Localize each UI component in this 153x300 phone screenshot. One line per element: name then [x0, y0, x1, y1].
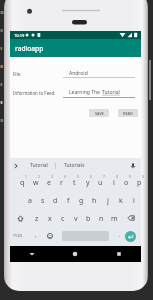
- staticText: Tutorials: [64, 162, 85, 169]
- staticText: l: [133, 196, 135, 206]
- staticText: Information to Feed:: [13, 90, 56, 96]
- staticText: r: [60, 178, 63, 188]
- staticText: 3: [51, 175, 53, 179]
- button[interactable]: o: [120, 173, 133, 191]
- button[interactable]: f: [62, 191, 75, 209]
- button[interactable]: Back: [24, 246, 40, 262]
- staticText: SAVE: [95, 111, 104, 116]
- button[interactable]: i: [107, 173, 120, 191]
- button[interactable]: x: [43, 209, 56, 227]
- button[interactable]: More suggestions: [13, 163, 19, 169]
- button[interactable]: Home: [67, 246, 83, 262]
- button[interactable]: r: [55, 173, 68, 191]
- staticText: 9: [129, 175, 131, 179]
- staticText: 10:19: [14, 33, 25, 38]
- button[interactable]: Voice input: [128, 161, 137, 170]
- button[interactable]: m: [108, 209, 121, 227]
- button[interactable]: z: [30, 209, 43, 227]
- button[interactable]: u: [94, 173, 107, 191]
- button[interactable]: b: [82, 209, 95, 227]
- staticText: b: [86, 214, 91, 224]
- button[interactable]: Recents: [111, 246, 127, 262]
- button[interactable]: v: [69, 209, 82, 227]
- button[interactable]: a: [23, 191, 36, 209]
- button[interactable]: w: [29, 173, 42, 191]
- staticText: File:: [13, 71, 22, 77]
- staticText: ,: [35, 231, 37, 239]
- staticText: z: [35, 214, 39, 224]
- button[interactable]: Emoji: [43, 227, 56, 245]
- button[interactable]: h: [88, 191, 101, 209]
- button[interactable]: ?123: [10, 227, 26, 245]
- button[interactable]: Enter: [125, 231, 136, 242]
- button[interactable]: l: [127, 191, 140, 209]
- staticText: a: [28, 196, 32, 206]
- button[interactable]: y: [81, 173, 94, 191]
- staticText: s: [41, 196, 45, 206]
- staticText: 4: [64, 175, 66, 179]
- staticText: 7: [103, 175, 105, 179]
- staticText: o: [124, 178, 129, 188]
- button[interactable]: Backspace: [121, 209, 141, 227]
- button[interactable]: SAVE: [89, 109, 109, 117]
- button[interactable]: ,: [29, 227, 42, 245]
- staticText: q: [20, 178, 25, 188]
- staticText: n: [99, 214, 104, 224]
- button[interactable]: d: [49, 191, 62, 209]
- button[interactable]: k: [114, 191, 127, 209]
- button[interactable]: g: [75, 191, 88, 209]
- button[interactable]: n: [95, 209, 108, 227]
- staticText: h: [92, 196, 97, 206]
- staticText: .: [119, 231, 121, 239]
- staticText: g: [79, 196, 84, 206]
- staticText: i: [113, 178, 115, 188]
- staticText: f: [67, 196, 70, 206]
- staticText: u: [98, 178, 103, 188]
- staticText: Learning The: [69, 89, 102, 96]
- staticText: e: [47, 178, 51, 188]
- button[interactable]: Tutorial: [22, 158, 55, 173]
- staticText: j: [107, 196, 109, 206]
- staticText: Tutorial: [30, 162, 48, 169]
- staticText: y: [86, 178, 90, 188]
- staticText: READ: [123, 111, 133, 116]
- staticText: t: [73, 178, 76, 188]
- button[interactable]: c: [56, 209, 69, 227]
- staticText: 0: [142, 175, 144, 179]
- button[interactable]: p: [133, 173, 146, 191]
- staticText: 1: [25, 175, 27, 179]
- staticText: c: [61, 214, 65, 224]
- button[interactable]: READ: [118, 109, 138, 117]
- staticText: m: [111, 214, 118, 224]
- button[interactable]: q: [16, 173, 29, 191]
- button[interactable]: e: [42, 173, 55, 191]
- button[interactable]: Shift: [10, 209, 30, 227]
- staticText: 2: [38, 175, 40, 179]
- button[interactable]: Tutorials: [56, 158, 93, 173]
- staticText: w: [33, 178, 39, 188]
- staticText: p: [137, 178, 142, 188]
- staticText: x: [48, 214, 52, 224]
- staticText: Tutorial: [102, 89, 120, 96]
- button[interactable]: j: [101, 191, 114, 209]
- staticText: k: [119, 196, 123, 206]
- button[interactable]: t: [68, 173, 81, 191]
- button[interactable]: .: [113, 227, 126, 245]
- staticText: Android: [69, 70, 88, 77]
- staticText: ?123: [13, 233, 23, 239]
- staticText: 5: [77, 175, 79, 179]
- button[interactable]: s: [36, 191, 49, 209]
- staticText: 6: [90, 175, 92, 179]
- staticText: d: [53, 196, 58, 206]
- staticText: 8: [116, 175, 118, 179]
- staticText: v: [74, 214, 78, 224]
- staticText: radioapp: [15, 44, 44, 53]
